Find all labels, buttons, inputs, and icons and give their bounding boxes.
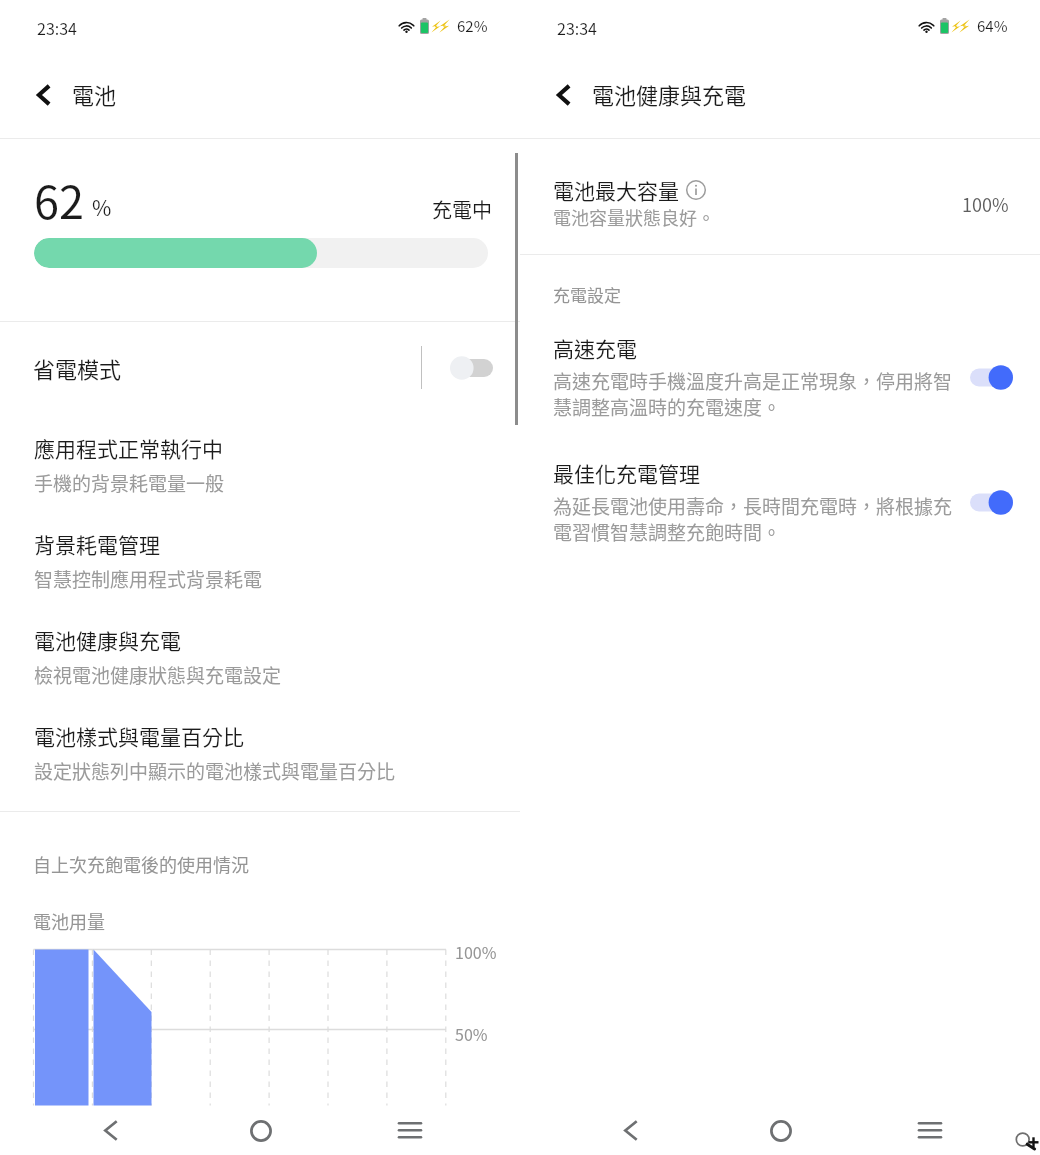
staticText: 62% [457,15,488,37]
button[interactable]: 省電模式 switch [450,356,493,380]
staticText: 高速充電時手機溫度升高是正常現象，停用將智 [553,367,953,395]
button[interactable]: Home [752,1103,810,1155]
staticText: 23:34 [557,16,597,39]
button[interactable]: 電池健康與充電 [0,625,520,721]
staticText: % [92,192,112,222]
button[interactable]: 高速充電 switch [970,365,1013,390]
button[interactable]: 最佳化充電管理 switch [970,490,1013,515]
button[interactable]: Home [232,1103,290,1155]
staticText: 64% [977,15,1008,37]
button[interactable]: 背景耗電管理 [0,529,520,625]
staticText: 省電模式 [33,352,122,384]
button[interactable]: 高速充電 [520,333,1040,441]
staticText: 最佳化充電管理 [553,458,700,488]
button[interactable]: Recents [901,1103,959,1155]
staticText: 自上次充飽電後的使用情況 [33,851,249,877]
staticText: 50% [455,1022,488,1045]
staticText: 23:34 [37,16,77,39]
button[interactable]: 應用程式正常執行中 [0,433,520,529]
button[interactable]: Back [82,1103,140,1155]
staticText: 充電設定 [553,282,621,307]
staticText: 電池健康與充電 [592,78,747,110]
staticText: 電池容量狀態良好。 [553,204,715,230]
button[interactable]: Recents [381,1103,439,1155]
staticText: 手機的背景耗電量一般 [34,469,225,497]
staticText: 100% [962,191,1009,217]
staticText: 電池最大容量 [553,175,679,205]
staticText: 為延長電池使用壽命，長時間充電時，將根據充 [553,492,953,520]
staticText: 應用程式正常執行中 [34,433,223,463]
button[interactable]: Back [538,69,590,121]
staticText: 高速充電 [553,333,637,363]
staticText: 電池 [72,78,117,110]
button[interactable]: 最佳化充電管理 [520,458,1040,566]
button[interactable]: Back [602,1103,660,1155]
staticText: 62 [34,167,84,232]
staticText: 100% [455,940,497,963]
staticText: 智慧控制應用程式背景耗電 [34,565,263,593]
button[interactable]: 電池樣式與電量百分比 [0,721,520,817]
staticText: 電池樣式與電量百分比 [34,721,244,751]
button[interactable]: 電池最大容量 [520,155,1040,253]
staticText: 檢視電池健康狀態與充電設定 [34,661,282,689]
staticText: 充電中 [432,195,492,224]
button[interactable]: 省電模式 [0,322,520,412]
staticText: 設定狀態列中顯示的電池樣式與電量百分比 [34,757,396,785]
staticText: 慧調整高溫時的充電速度。 [553,393,782,421]
button[interactable]: Back [18,69,70,121]
staticText: 電池用量 [33,908,105,934]
staticText: 背景耗電管理 [34,529,160,559]
staticText: 電池健康與充電 [34,625,181,655]
staticText: 電習慣智慧調整充飽時間。 [553,518,782,546]
